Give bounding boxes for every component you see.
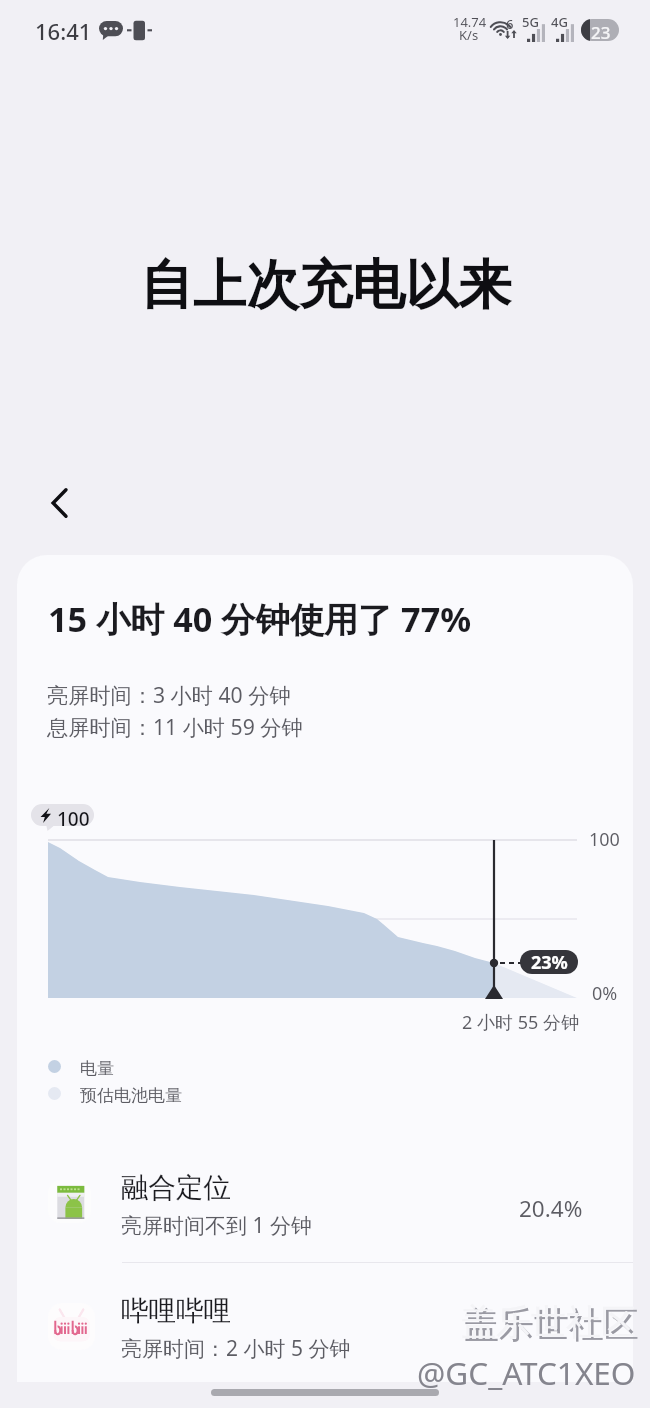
button[interactable]: 哔哩哔哩 xyxy=(17,1268,633,1382)
staticText: @GC_ATC1XEO xyxy=(417,1351,636,1394)
staticText: 电量 xyxy=(80,1058,114,1079)
staticText: 融合定位 xyxy=(121,1171,231,1206)
staticText: 100 xyxy=(57,806,90,826)
button[interactable]: Back xyxy=(32,475,88,531)
staticText: 盖乐世社区 xyxy=(461,1300,636,1344)
staticText: 20.4% xyxy=(519,1193,583,1224)
staticText: 息屏时间：11 小时 59 分钟 xyxy=(47,712,303,741)
staticText: K/s xyxy=(459,26,479,44)
staticText: 亮屏时间不到 1 分钟 xyxy=(121,1211,312,1240)
staticText: 亮屏时间：2 小时 5 分钟 xyxy=(121,1334,351,1363)
staticText: 14.74 xyxy=(453,13,487,31)
button[interactable]: 融合定位 xyxy=(17,1145,633,1267)
staticText: 盖乐世社区 xyxy=(464,1303,639,1347)
staticText: 0% xyxy=(592,981,618,1006)
staticText: 预估电池电量 xyxy=(80,1085,182,1106)
staticText: 亮屏时间：3 小时 40 分钟 xyxy=(47,680,291,709)
staticText: 自上次充电以来 xyxy=(140,252,511,319)
staticText: 6 xyxy=(506,15,514,33)
staticText: 16:41 xyxy=(35,16,92,46)
staticText: 23% xyxy=(531,950,568,974)
staticText: 4G xyxy=(551,13,568,31)
staticText: 5G xyxy=(522,13,539,31)
staticText: 100 xyxy=(589,827,620,852)
staticText: 23 xyxy=(591,21,611,43)
staticText: 2 小时 55 分钟 xyxy=(462,1010,579,1035)
staticText: 哔哩哔哩 xyxy=(121,1294,231,1329)
staticText: 15 小时 40 分钟使用了 77% xyxy=(48,595,472,642)
